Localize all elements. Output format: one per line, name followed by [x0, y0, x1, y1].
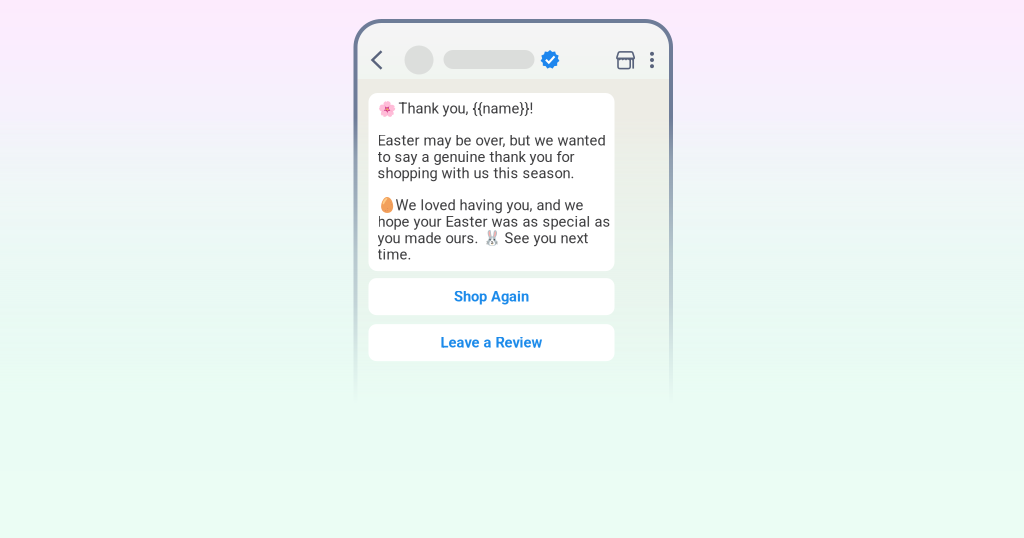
button[interactable]: Leave a Review	[368, 324, 614, 361]
button[interactable]: Shop Again	[368, 278, 614, 315]
button[interactable]: Back	[366, 44, 387, 76]
staticText: hope your Easter was as special as	[377, 213, 610, 230]
button[interactable]: Shop profile	[404, 44, 559, 76]
staticText: to say a genuine thank you for	[377, 148, 574, 166]
staticText: Shop Again	[454, 288, 529, 305]
button[interactable]: Store	[609, 44, 642, 76]
button[interactable]: More options	[642, 44, 662, 76]
staticText: 🌸 Thank you, {{name}}!	[377, 100, 533, 117]
staticText: shopping with us this season.	[377, 165, 574, 182]
staticText: you made ours. 🐰 See you next	[377, 229, 588, 247]
staticText: Easter may be over, but we wanted	[377, 132, 605, 149]
staticText: time.	[377, 246, 411, 263]
staticText: Leave a Review	[440, 334, 542, 351]
staticText: 🥚We loved having you, and we	[377, 197, 583, 214]
